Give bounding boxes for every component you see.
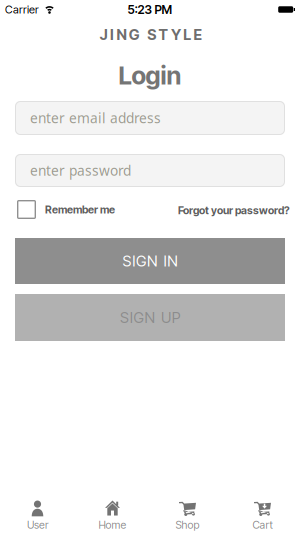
staticText: Login (118, 61, 181, 90)
staticText: Remember me (45, 203, 115, 216)
staticText: Forgot your password? (178, 204, 290, 217)
staticText: SIGN IN (122, 252, 178, 270)
button[interactable]: Remember me (17, 200, 115, 219)
staticText: SIGN UP (120, 309, 180, 326)
staticText: enter email address (30, 109, 161, 127)
button[interactable]: Shop (150, 484, 225, 533)
staticText: User (27, 518, 48, 531)
button[interactable]: SIGN UP (15, 294, 285, 341)
staticText: Cart (252, 518, 272, 531)
staticText: 5:23 PM (127, 2, 172, 17)
staticText: JING STYLE (99, 26, 201, 43)
button[interactable]: Cart (225, 484, 300, 533)
button[interactable]: SIGN IN (15, 238, 285, 284)
button[interactable]: User (0, 484, 75, 533)
staticText: Carrier (5, 3, 39, 16)
textField[interactable]: enter password (30, 161, 285, 180)
staticText: enter password (30, 161, 131, 180)
textField[interactable]: enter email address (30, 109, 285, 127)
staticText: Shop (175, 518, 199, 531)
staticText: Home (98, 518, 126, 531)
button[interactable]: Forgot your password? (178, 200, 290, 217)
button[interactable]: Home (75, 484, 150, 533)
